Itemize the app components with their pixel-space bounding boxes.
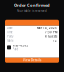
staticText: Order Confirmed [14,2,50,8]
staticText: Party [7,35,13,38]
staticText: Mar 14, 2025 [37,26,57,30]
staticText: Visa ••4242 [12,44,28,47]
button[interactable]: View Details [5,58,59,63]
staticText: 4 Guests [45,35,57,38]
staticText: 7:30 PM [45,30,57,34]
staticText: Your table is reserved [17,9,47,13]
staticText: View Details [23,58,41,62]
staticText: Paid [12,48,18,51]
staticText: Time [7,30,13,34]
staticText: 12 [53,39,57,42]
staticText: Table [7,39,14,42]
staticText: Date [7,26,13,30]
